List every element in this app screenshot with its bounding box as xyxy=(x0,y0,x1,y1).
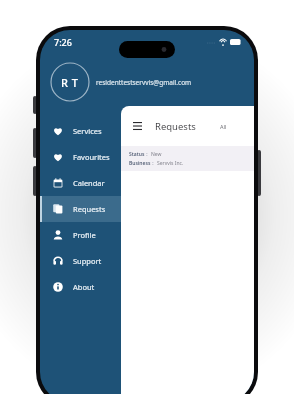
staticText: Favourites xyxy=(73,152,110,162)
button[interactable]: Support xyxy=(40,248,254,274)
staticText: Support xyxy=(73,256,102,266)
button[interactable]: Open navigation menu xyxy=(129,118,145,134)
button[interactable]: Calendar xyxy=(40,170,254,196)
staticText: Requests xyxy=(155,120,196,133)
staticText: R T xyxy=(61,75,79,90)
button[interactable]: R T xyxy=(40,60,254,104)
staticText: About xyxy=(73,282,95,292)
staticText: All xyxy=(220,123,227,130)
staticText: Business xyxy=(129,160,151,167)
staticText: Profile xyxy=(73,230,96,240)
staticText: : xyxy=(145,151,151,158)
button[interactable]: All xyxy=(218,121,229,132)
staticText: 7:26 xyxy=(54,36,72,48)
staticText: Servvis Inc. xyxy=(157,160,184,167)
staticText: : xyxy=(151,160,157,167)
button[interactable]: Favourites xyxy=(40,144,254,170)
staticText: residenttestservvis@gmail.com xyxy=(96,78,192,87)
button[interactable]: Services xyxy=(40,118,254,144)
button[interactable]: About xyxy=(40,274,254,300)
staticText: Requests xyxy=(73,204,106,214)
button[interactable]: Profile xyxy=(40,222,254,248)
staticText: Services xyxy=(73,126,102,136)
button[interactable]: Status xyxy=(121,146,254,171)
staticText: Status xyxy=(129,151,145,158)
staticText: Calendar xyxy=(73,178,105,188)
staticText: New xyxy=(151,151,162,158)
button[interactable]: Requests xyxy=(40,196,254,222)
